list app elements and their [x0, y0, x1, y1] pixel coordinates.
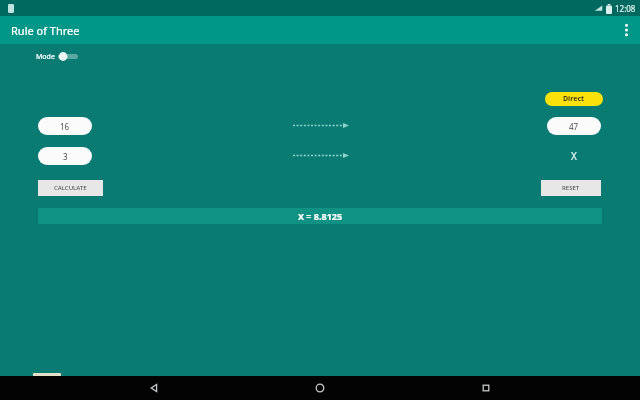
staticText: Test Ad — [36, 374, 58, 382]
button[interactable]: RESET — [541, 180, 601, 196]
staticText: CALCULATE — [54, 184, 87, 192]
staticText: RESET — [562, 184, 580, 192]
staticText: 47 — [569, 121, 579, 132]
staticText: X — [571, 149, 577, 163]
button[interactable]: Back — [142, 376, 166, 400]
button[interactable]: Mode — [36, 51, 78, 62]
staticText: 16 — [60, 121, 70, 132]
button[interactable]: CALCULATE — [38, 180, 103, 196]
staticText: X = 8.8125 — [298, 210, 343, 222]
button[interactable]: Direct — [545, 92, 603, 106]
staticText: 12:08 — [615, 3, 636, 14]
button[interactable]: Home — [308, 376, 332, 400]
staticText: 3 — [63, 151, 68, 162]
button[interactable]: Test Ad — [36, 374, 58, 382]
button[interactable]: 16 — [38, 117, 92, 135]
button[interactable]: More options — [612, 16, 640, 44]
button[interactable]: 47 — [547, 117, 601, 135]
staticText: Mode — [36, 52, 55, 62]
button[interactable]: Recents — [474, 376, 498, 400]
staticText: Rule of Three — [11, 23, 80, 38]
button[interactable]: 3 — [38, 147, 92, 165]
staticText: Direct — [563, 94, 585, 104]
